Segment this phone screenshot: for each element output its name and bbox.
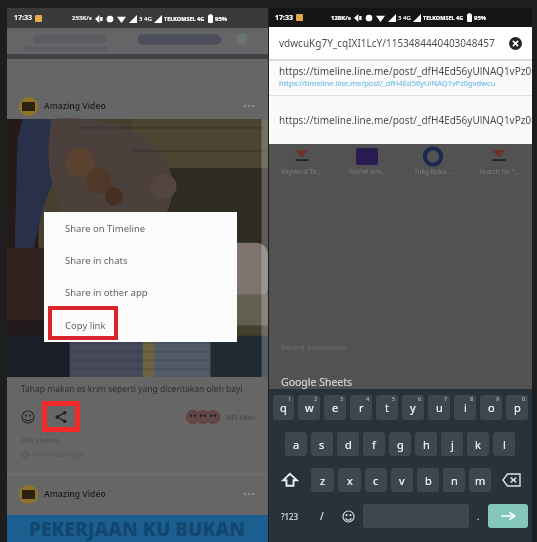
button[interactable]: ?123 — [273, 504, 307, 528]
button[interactable]: k — [467, 432, 489, 456]
button[interactable]: a — [285, 432, 307, 456]
staticText: Recent bookmarks — [281, 342, 347, 352]
button[interactable]: s — [311, 432, 333, 456]
staticText: TELKOMSEL 4G — [164, 15, 205, 22]
button[interactable]: Search for "... — [466, 148, 532, 176]
staticText: 95% — [474, 14, 487, 22]
staticText: 1 — [288, 395, 292, 402]
button[interactable]: Shift — [273, 468, 307, 492]
staticText: 2 — [314, 395, 318, 402]
button[interactable]: v — [391, 468, 413, 492]
button[interactable]: Emoji — [337, 504, 359, 528]
button[interactable]: More options — [242, 487, 256, 501]
button[interactable]: r — [350, 395, 372, 420]
button[interactable]: z — [311, 468, 334, 492]
staticText: j — [451, 437, 454, 452]
button[interactable]: w — [298, 395, 320, 420]
button[interactable]: q — [273, 395, 294, 420]
staticText: z — [320, 473, 326, 488]
button[interactable]: c — [365, 468, 387, 492]
button[interactable]: x — [338, 468, 361, 492]
staticText: k — [475, 437, 481, 452]
staticText: 128K/s — [331, 14, 351, 22]
staticText: 17:33 — [275, 13, 293, 23]
staticText: y — [410, 400, 416, 415]
staticText: 4 — [366, 395, 370, 402]
staticText: c — [373, 473, 379, 488]
staticText: n — [451, 473, 458, 488]
button[interactable]: m — [469, 468, 491, 492]
staticText: o — [488, 400, 495, 415]
button[interactable]: b — [417, 468, 439, 492]
button[interactable]: vdwcuKg7Y_cqIXI1LcY/1153484440403048457 — [269, 27, 532, 59]
staticText: ?123 — [281, 511, 299, 522]
staticText: Copy link — [65, 319, 106, 332]
button[interactable]: d — [337, 432, 359, 456]
button[interactable]: Share on Timeline — [44, 212, 237, 244]
button[interactable]: React — [19, 408, 37, 426]
staticText: x — [347, 473, 353, 488]
button[interactable]: You've alre... — [334, 148, 400, 176]
button[interactable]: n — [443, 468, 465, 492]
staticText: 469 shares — [21, 435, 60, 445]
staticText: Amazing Video — [44, 100, 106, 112]
staticText: 12 minutes ago — [33, 450, 84, 460]
staticText: h — [423, 437, 430, 452]
button[interactable]: g — [389, 432, 411, 456]
staticText: 7 — [444, 395, 448, 402]
button[interactable]: . — [473, 504, 484, 528]
button[interactable]: https://timeline.line.me/post/_dfH4Ed56y… — [269, 61, 532, 95]
button[interactable]: https://timeline.line.me/post/_dfH4Ed56y… — [269, 96, 532, 144]
staticText: Share on Timeline — [65, 222, 146, 235]
button[interactable]: / — [311, 504, 333, 528]
button[interactable]: Share in other app — [44, 276, 237, 308]
button[interactable]: Amazing Video — [7, 481, 268, 507]
button[interactable]: y — [402, 395, 424, 420]
staticText: w — [305, 400, 314, 415]
button[interactable]: Enter — [488, 504, 528, 528]
staticText: r — [359, 400, 364, 415]
staticText: 6 — [418, 395, 422, 402]
staticText: / — [320, 509, 324, 523]
staticText: 253K/s — [72, 14, 92, 22]
button[interactable]: t — [376, 395, 398, 420]
staticText: Tahap makan es krim seperti yang dicerit… — [21, 383, 243, 395]
button[interactable]: Tukg Buku... — [400, 148, 466, 176]
staticText: 3 — [340, 395, 344, 402]
button[interactable]: Amazing Video — [7, 93, 268, 119]
button[interactable]: o — [480, 395, 502, 420]
staticText: i — [464, 400, 467, 415]
button[interactable]: Copy link — [44, 308, 237, 342]
button[interactable]: Keyword To... — [269, 148, 334, 176]
staticText: You've alre... — [348, 167, 387, 176]
staticText: e — [332, 400, 339, 415]
staticText: Keyword To... — [281, 167, 322, 176]
staticText: PEKERJAAN KU BUKAN — [29, 516, 246, 542]
button[interactable]: Backspace — [495, 468, 528, 492]
staticText: Amazing Video — [44, 488, 106, 500]
staticText: 3 4G — [398, 14, 411, 22]
staticText: Google Sheets — [281, 375, 353, 389]
button[interactable]: e — [324, 395, 346, 420]
button[interactable]: h — [415, 432, 437, 456]
staticText: Share in chats — [65, 254, 128, 267]
button[interactable]: Share in chats — [44, 244, 237, 276]
staticText: 95% — [215, 15, 228, 23]
staticText: t — [385, 400, 389, 415]
staticText: https://timeline.line.me/post/_dfH4Ed56y… — [279, 113, 532, 127]
button[interactable]: j — [441, 432, 463, 456]
button[interactable]: More options — [242, 99, 256, 113]
button[interactable]: p — [506, 395, 528, 420]
staticText: v — [399, 473, 405, 488]
staticText: Tukg Buku... — [414, 167, 452, 176]
button[interactable]: u — [428, 395, 450, 420]
button[interactable]: Share — [42, 401, 80, 432]
staticText: d — [345, 437, 352, 452]
button[interactable]: f — [363, 432, 385, 456]
button[interactable]: l — [493, 432, 515, 456]
button[interactable]: i — [454, 395, 476, 420]
staticText: 0 — [522, 395, 526, 402]
button[interactable]: Clear — [508, 36, 522, 50]
staticText: 5 — [392, 395, 396, 402]
